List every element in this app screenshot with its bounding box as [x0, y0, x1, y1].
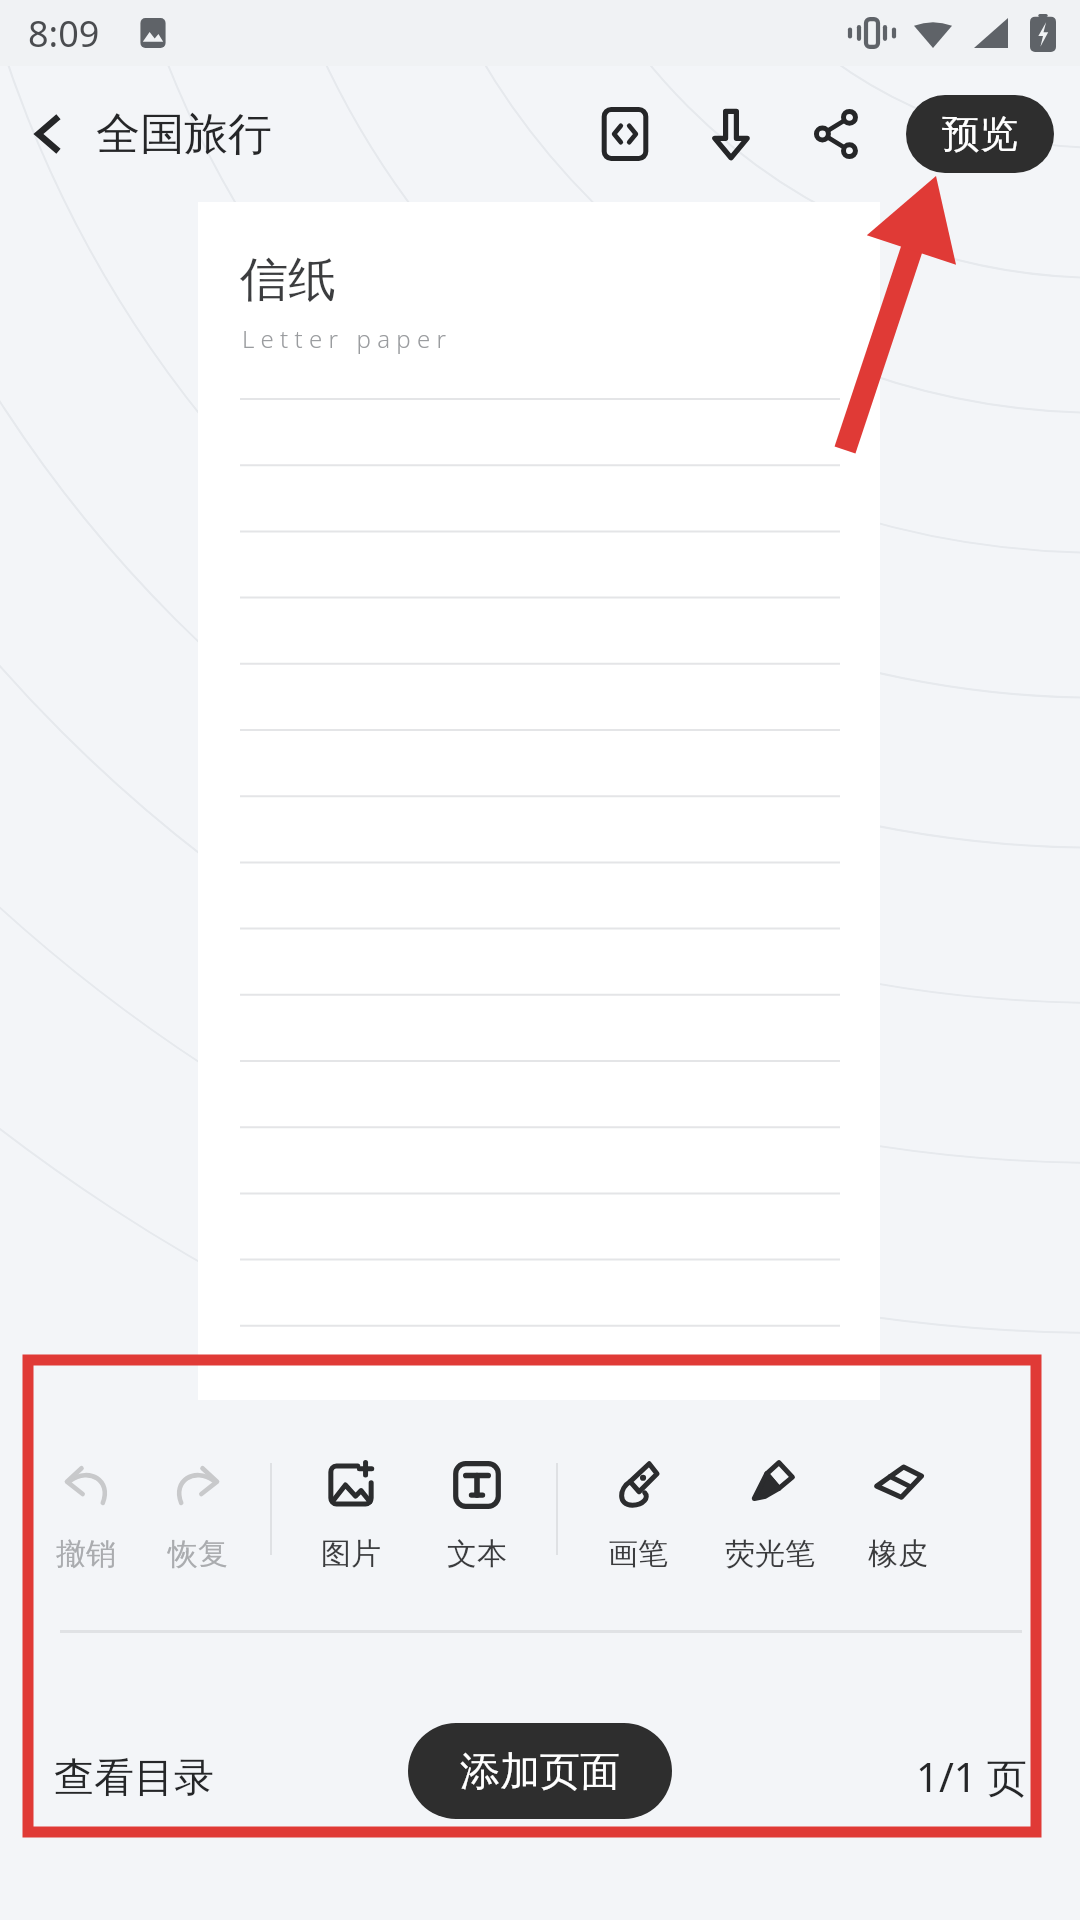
staticText: 信纸 — [240, 250, 336, 310]
button[interactable]: Insert code — [572, 81, 678, 187]
staticText: 荧光笔 — [725, 1535, 815, 1573]
button[interactable]: Download — [678, 81, 784, 187]
button[interactable]: 信纸 — [198, 202, 880, 1400]
staticText: 撤销 — [56, 1535, 116, 1573]
staticText: L e t t e r p a p e r — [242, 322, 446, 355]
button[interactable]: Back — [0, 79, 96, 189]
staticText: 1/1 页 — [916, 1749, 1028, 1804]
staticText: 预览 — [942, 110, 1018, 158]
button[interactable]: 画笔 — [574, 1447, 702, 1583]
button[interactable]: 预览 — [906, 95, 1054, 173]
button[interactable]: 添加页面 — [408, 1723, 672, 1819]
button[interactable]: Share — [784, 81, 890, 187]
staticText: 图片 — [321, 1535, 381, 1573]
button[interactable]: 撤销 — [30, 1447, 142, 1583]
button[interactable]: 恢复 — [142, 1447, 254, 1583]
staticText: 添加页面 — [460, 1746, 620, 1796]
staticText: 文本 — [447, 1535, 507, 1573]
button[interactable]: 橡皮 — [838, 1447, 958, 1583]
button[interactable]: 荧光笔 — [702, 1447, 838, 1583]
button[interactable]: 图片 — [288, 1447, 414, 1583]
button[interactable]: 查看目录 — [26, 1730, 242, 1824]
staticText: 橡皮 — [868, 1535, 928, 1573]
staticText: 8:09 — [28, 9, 100, 58]
staticText: 全国旅行 — [96, 107, 272, 162]
staticText: 画笔 — [608, 1535, 668, 1573]
staticText: 恢复 — [168, 1535, 228, 1573]
button[interactable]: 文本 — [414, 1447, 540, 1583]
